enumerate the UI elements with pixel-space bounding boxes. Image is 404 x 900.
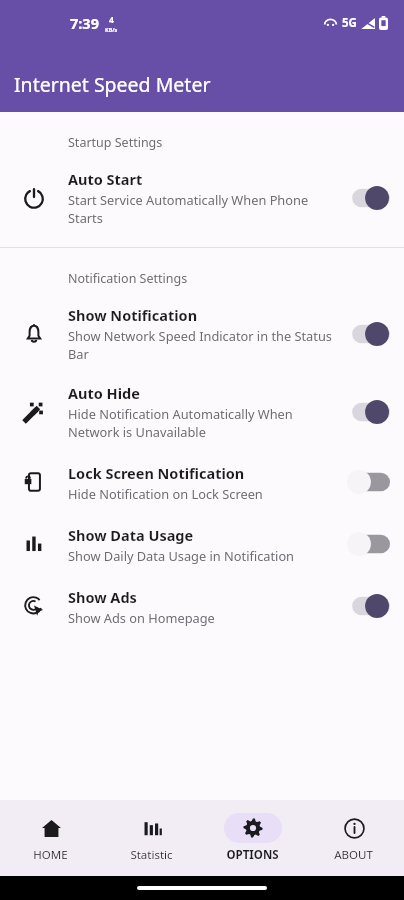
staticText: KB/s: [105, 26, 118, 33]
staticText: OPTIONS: [226, 847, 279, 863]
other: Lock screen notification: [23, 471, 45, 493]
staticText: Auto Hide: [68, 383, 140, 403]
button[interactable]: Show data usage: [0, 513, 404, 575]
staticText: Notification Settings: [68, 270, 188, 287]
other: Options: [243, 818, 263, 838]
staticText: Hide Notification on Lock Screen: [68, 485, 263, 502]
other: Show notification: [23, 323, 45, 345]
button[interactable]: On: [346, 593, 390, 619]
button[interactable]: On: [346, 321, 390, 347]
staticText: Hide Notification Automatically When Net…: [68, 405, 336, 441]
staticText: Statistic: [130, 847, 173, 863]
staticText: HOME: [33, 847, 68, 863]
button[interactable]: On: [346, 399, 390, 425]
button[interactable]: Auto start: [0, 159, 404, 237]
button[interactable]: About: [303, 800, 404, 876]
button[interactable]: Off: [346, 531, 390, 557]
button[interactable]: On: [346, 185, 390, 211]
staticText: Show Daily Data Usage in Notification: [68, 547, 295, 564]
staticText: 4: [109, 14, 114, 26]
staticText: ABOUT: [334, 847, 373, 863]
staticText: Lock Screen Notification: [68, 463, 245, 483]
button[interactable]: Show notification: [0, 295, 404, 373]
staticText: Auto Start: [68, 169, 143, 189]
other: Auto hide: [23, 401, 45, 423]
other: About: [344, 818, 365, 839]
other: Statistic: [142, 818, 163, 839]
staticText: Start Service Automatically When Phone S…: [68, 191, 336, 227]
button[interactable]: Auto hide: [0, 373, 404, 451]
staticText: 7:39: [70, 13, 99, 33]
button[interactable]: Options: [202, 800, 303, 876]
staticText: Show Network Speed Indicator in the Stat…: [68, 327, 336, 363]
other: Auto start: [23, 187, 45, 209]
button[interactable]: Off: [346, 469, 390, 495]
staticText: Startup Settings: [68, 134, 163, 151]
other: Show data usage: [23, 533, 45, 555]
button[interactable]: Statistic: [101, 800, 202, 876]
other: Home: [41, 818, 62, 839]
staticText: Show Ads: [68, 587, 137, 607]
staticText: Show Ads on Homepage: [68, 609, 215, 626]
staticText: 5G: [342, 15, 357, 31]
button[interactable]: Show ads: [0, 575, 404, 637]
button[interactable]: Lock screen notification: [0, 451, 404, 513]
staticText: Show Data Usage: [68, 525, 194, 545]
button[interactable]: Home: [0, 800, 101, 876]
staticText: Show Notification: [68, 305, 198, 325]
other: Show ads: [23, 595, 45, 617]
staticText: Internet Speed Meter: [14, 71, 211, 98]
